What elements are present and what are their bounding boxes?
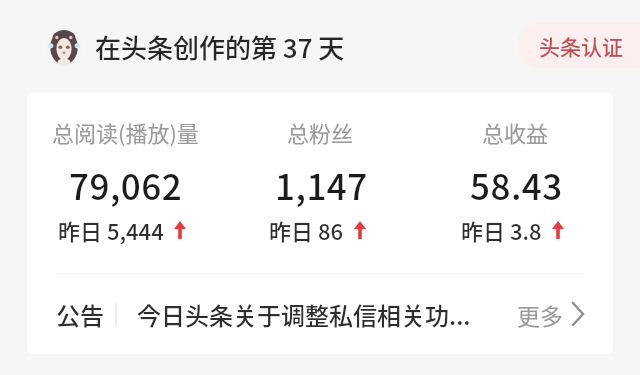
staticText: 总阅读(播放)量	[52, 116, 199, 148]
staticText: 更多	[517, 298, 563, 331]
staticText: 总粉丝	[287, 116, 354, 148]
staticText: 昨日 86	[269, 214, 344, 246]
staticText: 1,147	[275, 159, 368, 210]
staticText: 79,062	[69, 159, 183, 210]
staticText: 头条认证	[539, 31, 623, 61]
button[interactable]: 公告	[27, 274, 613, 354]
staticText: 今日头条关于调整私信相关功...	[137, 297, 471, 332]
button[interactable]: Profile avatar	[45, 28, 83, 66]
staticText: 昨日 3.8	[461, 214, 542, 246]
staticText: 在头条创作的第 37 天	[95, 28, 345, 66]
staticText: 总收益	[482, 116, 549, 148]
staticText: 公告	[56, 297, 104, 332]
staticText: 昨日 5,444	[58, 214, 164, 246]
staticText: 58.43	[470, 159, 563, 210]
button[interactable]: 头条认证	[517, 23, 640, 68]
